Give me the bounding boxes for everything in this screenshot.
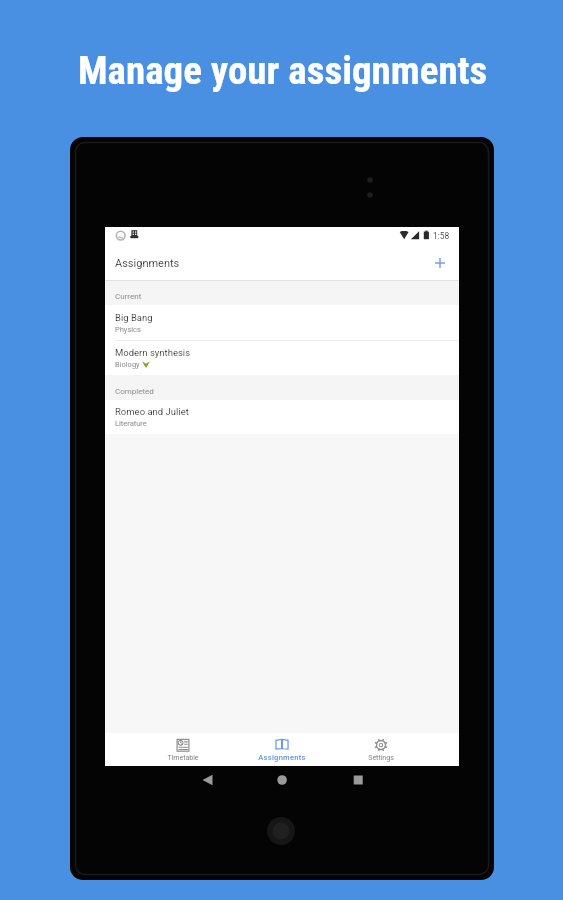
staticText: Literature (115, 419, 147, 428)
button[interactable]: Add assignment (429, 252, 451, 274)
staticText: Current (115, 292, 142, 301)
button[interactable]: Timetable (138, 733, 228, 766)
button[interactable]: Assignments (237, 733, 327, 766)
button[interactable]: Romeo and Juliet (105, 400, 459, 434)
staticText: 1:58 (433, 231, 450, 241)
staticText: Physics (115, 325, 141, 334)
staticText: Settings (368, 754, 394, 762)
staticText: Timetable (167, 754, 199, 762)
staticText: Assignments (258, 753, 306, 762)
staticText: Manage your assignments (78, 48, 488, 94)
button[interactable]: Big Bang (105, 305, 459, 340)
staticText: Assignments (115, 257, 180, 270)
button[interactable]: Modern synthesis (105, 341, 459, 375)
staticText: Romeo and Juliet (115, 406, 189, 417)
staticText: Biology (115, 360, 140, 369)
staticText: Modern synthesis (115, 347, 191, 358)
button[interactable]: Settings (336, 733, 426, 766)
staticText: Completed (115, 387, 154, 396)
staticText: Big Bang (115, 312, 153, 323)
